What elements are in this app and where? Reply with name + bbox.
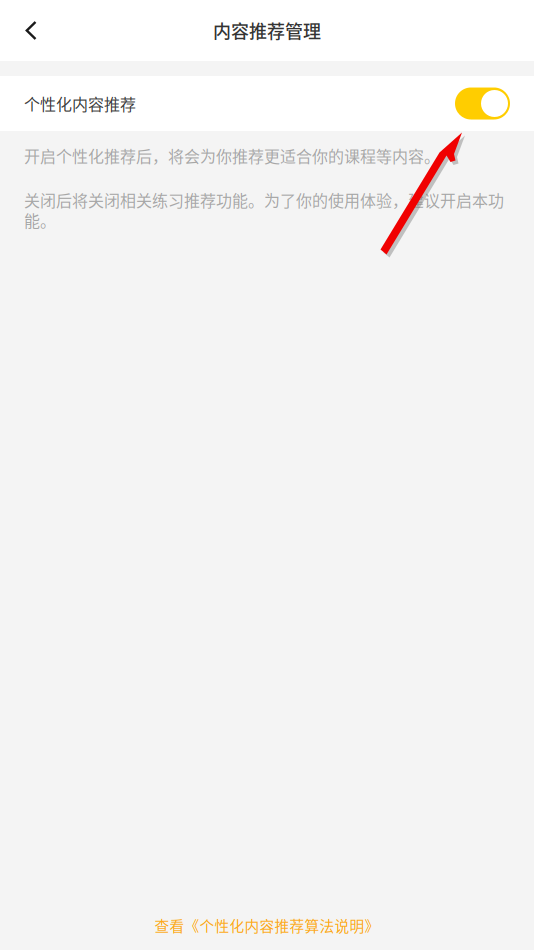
staticText: 关闭后将关闭相关练习推荐功能。为了你的使用体验，建议开启本功能。: [24, 188, 504, 231]
button[interactable]: Back: [0, 0, 62, 61]
button[interactable]: 查看《个性化内容推荐算法说明》: [0, 907, 534, 944]
staticText: 个性化内容推荐: [24, 92, 136, 115]
staticText: 内容推荐管理: [213, 17, 321, 44]
staticText: 开启个性化推荐后，将会为你推荐更适合你的课程等内容。: [24, 144, 440, 167]
button[interactable]: 个性化内容推荐: [455, 87, 510, 119]
staticText: 查看《个性化内容推荐算法说明》: [154, 915, 379, 936]
